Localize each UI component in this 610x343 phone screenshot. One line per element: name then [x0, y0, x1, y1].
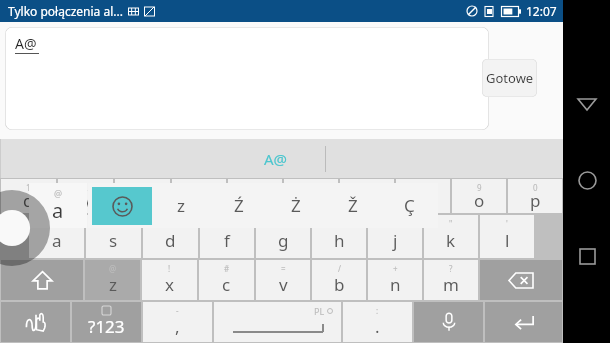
button[interactable]: ! — [142, 260, 197, 300]
staticText: x — [165, 273, 174, 296]
button[interactable]: Recents — [565, 234, 609, 278]
button[interactable]: ' — [480, 215, 534, 258]
button[interactable]: Backspace — [480, 260, 562, 300]
button[interactable]: Voice input — [414, 302, 483, 342]
button[interactable]: Space — [214, 302, 341, 342]
button[interactable]: 8 — [396, 179, 450, 213]
button[interactable]: # — [199, 260, 254, 300]
staticText: Tylko połączenia al... — [8, 3, 123, 19]
staticText: d — [165, 229, 176, 252]
button[interactable]: 2 — [58, 179, 113, 213]
button[interactable]: : — [343, 302, 412, 342]
staticText: h — [334, 229, 345, 252]
button[interactable]: Ç — [381, 183, 438, 228]
staticText: Gotowe — [486, 69, 534, 87]
staticText: a — [52, 197, 64, 224]
staticText: a — [52, 229, 62, 252]
button[interactable]: & — [256, 215, 310, 258]
staticText: . — [375, 315, 380, 338]
staticText: g — [278, 229, 289, 252]
button[interactable]: Ž — [324, 183, 381, 228]
button[interactable]: Shift — [1, 260, 83, 300]
staticText: A@ — [264, 149, 288, 169]
staticText: c — [222, 273, 231, 296]
button[interactable]: * — [368, 215, 422, 258]
button[interactable]: 3 — [115, 179, 170, 213]
staticText: / — [338, 263, 341, 274]
button[interactable]: 6 — [284, 179, 338, 213]
staticText: # — [111, 218, 117, 229]
staticText: @ — [109, 263, 117, 274]
button[interactable]: ?123 — [72, 302, 141, 342]
button[interactable]: # — [86, 215, 141, 258]
staticText: f — [224, 229, 230, 252]
staticText: s — [109, 229, 118, 252]
staticText: : — [376, 305, 379, 316]
staticText: 9 — [477, 182, 482, 193]
staticText: @ — [54, 187, 63, 199]
button[interactable]: Enter — [485, 302, 562, 342]
button[interactable]: - — [312, 215, 366, 258]
button[interactable]: % — [200, 215, 254, 258]
button[interactable]: Ź — [210, 183, 267, 228]
button[interactable]: / — [312, 260, 366, 300]
button[interactable]: @ — [29, 215, 84, 258]
button[interactable]: Handwriting — [1, 302, 70, 342]
button[interactable]: - — [143, 302, 212, 342]
button[interactable]: Back — [565, 82, 609, 126]
button[interactable]: 4 — [172, 179, 226, 213]
button[interactable]: 9 — [452, 179, 506, 213]
staticText: m — [443, 273, 459, 296]
staticText: z — [177, 194, 185, 217]
staticText: Ż — [291, 194, 301, 217]
staticText: Ź — [234, 194, 244, 217]
button[interactable]: = — [256, 260, 310, 300]
staticText: b — [334, 273, 345, 296]
button[interactable]: 0 — [508, 179, 562, 213]
button[interactable]: 1 — [1, 179, 56, 213]
button[interactable]: Home — [565, 158, 609, 202]
button[interactable]: @ — [85, 260, 140, 300]
button[interactable]: A@ — [226, 139, 326, 178]
button[interactable]: " — [424, 215, 478, 258]
button[interactable]: Emoji — [92, 187, 152, 225]
button[interactable]: 5 — [228, 179, 282, 213]
staticText: 3 — [140, 182, 145, 193]
button[interactable]: 7 — [340, 179, 394, 213]
staticText: + — [393, 263, 398, 274]
button[interactable]: + — [368, 260, 422, 300]
staticText: l — [505, 229, 510, 252]
staticText: 0 — [533, 182, 538, 193]
staticText: PL — [314, 305, 325, 317]
staticText: , — [175, 315, 180, 338]
staticText: # — [224, 263, 230, 274]
staticText: z — [109, 273, 117, 296]
button[interactable]: $ — [143, 215, 198, 258]
button[interactable]: z — [152, 183, 210, 228]
staticText: j — [393, 229, 398, 252]
staticText: ?123 — [88, 315, 125, 338]
staticText: ? — [449, 263, 453, 274]
button[interactable]: Gotowe — [482, 59, 537, 97]
button[interactable]: A@ — [5, 27, 489, 130]
button[interactable]: Ż — [267, 183, 324, 228]
staticText: Ç — [404, 194, 415, 217]
button[interactable]: ? — [424, 260, 478, 300]
staticText: n — [390, 273, 401, 296]
staticText: - — [176, 305, 179, 316]
staticText: w — [79, 189, 93, 212]
staticText: A@ — [15, 34, 37, 53]
